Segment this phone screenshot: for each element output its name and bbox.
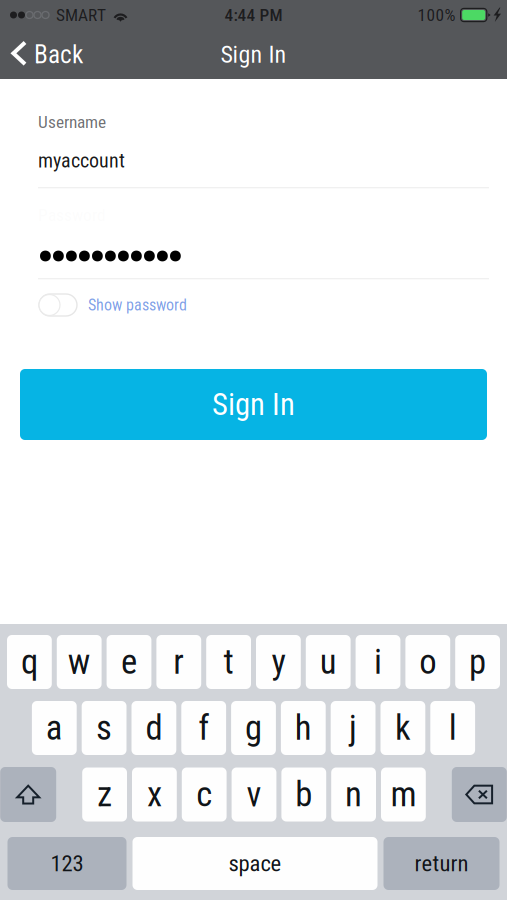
staticText: l <box>449 708 457 748</box>
staticText: Sign In <box>212 386 295 422</box>
button[interactable]: Delete <box>452 767 507 822</box>
staticText: Sign In <box>220 40 286 68</box>
staticText: f <box>198 708 209 748</box>
staticText: k <box>395 708 411 748</box>
staticText: 123 <box>50 850 83 877</box>
staticText: space <box>228 850 281 877</box>
staticText: t <box>224 642 234 682</box>
staticText: u <box>320 642 337 682</box>
staticText: h <box>295 708 312 748</box>
staticText: s <box>96 708 112 748</box>
button[interactable]: g <box>231 701 276 755</box>
staticText: 100% <box>418 5 456 25</box>
button[interactable]: return <box>383 837 499 890</box>
button[interactable]: k <box>380 701 425 755</box>
staticText: myaccount <box>38 149 125 172</box>
button[interactable]: c <box>182 767 227 821</box>
button[interactable]: t <box>206 635 251 689</box>
staticText: g <box>245 708 262 748</box>
button[interactable]: a <box>32 701 77 755</box>
staticText: Username <box>38 112 106 132</box>
staticText: x <box>147 774 162 815</box>
button[interactable]: 123 <box>7 837 126 890</box>
staticText: 4:44 PM <box>224 5 282 25</box>
staticText: Back <box>34 40 83 69</box>
staticText: v <box>246 774 261 815</box>
staticText: a <box>46 708 63 748</box>
staticText: m <box>390 774 416 815</box>
staticText: SMART <box>56 5 106 25</box>
staticText: return <box>414 850 468 877</box>
button[interactable]: b <box>281 767 326 821</box>
staticText: i <box>374 642 382 682</box>
button[interactable]: u <box>306 635 351 689</box>
button[interactable]: o <box>405 635 450 689</box>
staticText: e <box>121 642 137 682</box>
button[interactable]: y <box>256 635 301 689</box>
button[interactable]: z <box>82 767 127 821</box>
button[interactable]: q <box>7 635 52 689</box>
staticText: w <box>68 642 91 682</box>
button[interactable]: r <box>156 635 201 689</box>
button[interactable]: m <box>381 767 426 821</box>
staticText: z <box>97 774 112 815</box>
button[interactable]: n <box>331 767 376 821</box>
button[interactable]: f <box>181 701 226 755</box>
staticText: r <box>173 642 184 682</box>
button[interactable]: i <box>356 635 400 689</box>
button[interactable]: h <box>281 701 326 755</box>
staticText: n <box>345 774 362 815</box>
button[interactable]: w <box>57 635 102 689</box>
staticText: y <box>271 642 285 682</box>
staticText: o <box>419 642 436 682</box>
staticText: d <box>145 708 162 748</box>
staticText: b <box>295 774 312 815</box>
button[interactable]: l <box>430 701 475 755</box>
button[interactable]: space <box>132 837 377 890</box>
button[interactable]: Show password <box>39 290 187 320</box>
staticText: j <box>349 708 357 748</box>
button[interactable]: x <box>132 767 177 821</box>
button[interactable]: p <box>455 635 500 689</box>
button[interactable]: s <box>82 701 126 755</box>
button[interactable]: v <box>232 767 276 821</box>
button[interactable]: e <box>107 635 151 689</box>
staticText: p <box>469 642 486 682</box>
staticText: c <box>196 774 212 815</box>
button[interactable]: d <box>131 701 176 755</box>
button[interactable]: j <box>331 701 375 755</box>
staticText: Show password <box>88 296 187 314</box>
button[interactable]: Back <box>0 30 97 79</box>
staticText: q <box>21 642 38 682</box>
button[interactable]: Sign In <box>20 369 487 440</box>
button[interactable]: Shift <box>0 767 56 822</box>
